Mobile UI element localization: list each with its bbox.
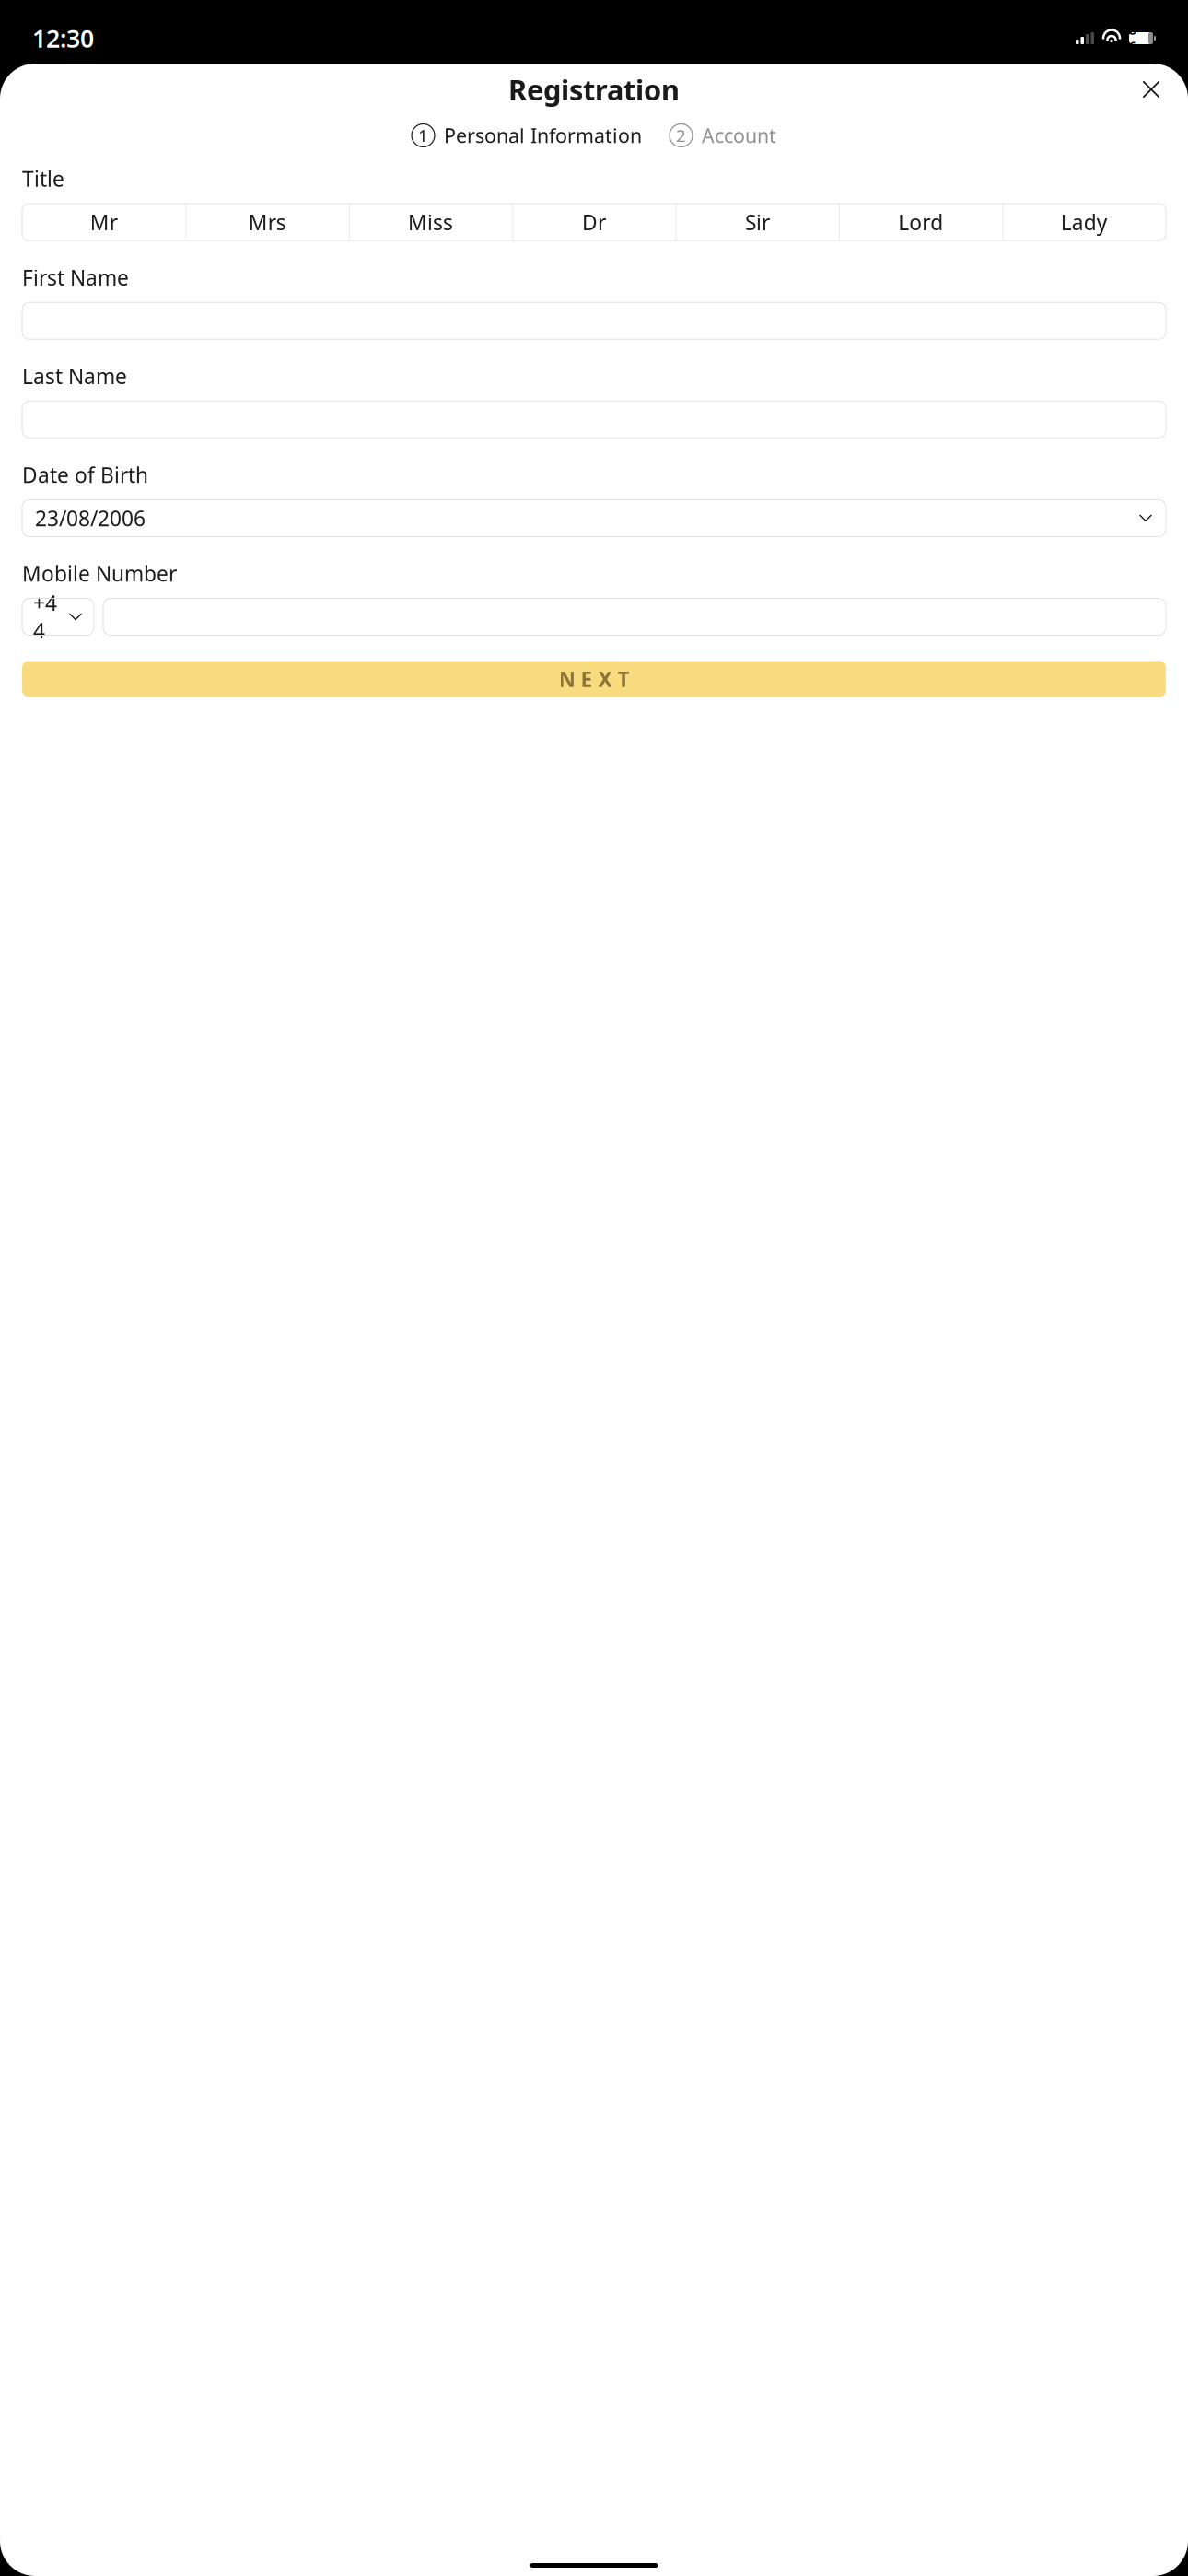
staticText: First Name — [22, 264, 129, 291]
staticText: Mrs — [248, 208, 286, 236]
staticText: 2 — [676, 124, 686, 147]
button[interactable]: 1 — [412, 117, 642, 154]
button[interactable]: Miss — [349, 204, 512, 241]
staticText: +44 — [33, 589, 57, 645]
staticText: Title — [22, 165, 64, 193]
staticText: Dr — [582, 208, 606, 236]
staticText: 12:30 — [32, 22, 94, 55]
staticText: Mr — [90, 208, 118, 236]
staticText: Lady — [1061, 208, 1108, 236]
staticText: 1 — [418, 124, 428, 147]
button[interactable]: N E X T — [22, 661, 1166, 697]
staticText: Miss — [408, 208, 453, 236]
staticText: Lord — [898, 208, 943, 236]
staticText: Last Name — [22, 362, 127, 390]
staticText: Registration — [508, 71, 680, 108]
staticText: Date of Birth — [22, 461, 148, 489]
button[interactable]: Mrs — [185, 204, 349, 241]
button[interactable]: Dr — [512, 204, 676, 241]
staticText: Mobile Number — [22, 560, 177, 587]
button[interactable]: +44 — [22, 598, 94, 635]
button[interactable]: Lord — [839, 204, 1002, 241]
button[interactable] — [103, 598, 1166, 635]
button[interactable]: Lady — [1003, 204, 1166, 241]
staticText: Account — [702, 122, 776, 148]
staticText: Sir — [745, 208, 770, 236]
staticText: N E X T — [559, 665, 629, 693]
button[interactable]: 2 — [670, 117, 776, 154]
staticText: 86 — [1129, 22, 1136, 55]
button[interactable]: Mr — [22, 204, 185, 241]
button[interactable]: Close — [1131, 69, 1171, 110]
staticText: 23/08/2006 — [35, 504, 146, 532]
staticText: Personal Information — [444, 122, 642, 148]
button[interactable]: Sir — [676, 204, 839, 241]
button[interactable]: 23/08/2006 — [22, 500, 1166, 537]
